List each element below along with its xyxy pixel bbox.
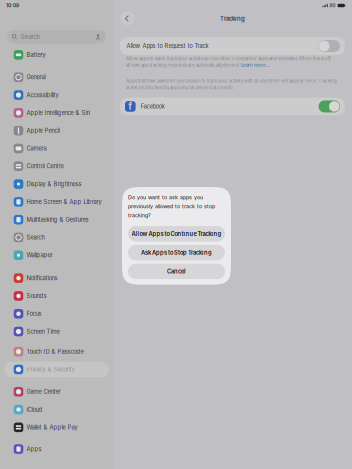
staticText: Wallpaper bbox=[26, 252, 52, 259]
button[interactable]: Allow Apps to Request to Track bbox=[120, 37, 345, 55]
staticText: f bbox=[128, 100, 132, 112]
button[interactable]: Multitasking & Gestures bbox=[4, 212, 109, 227]
button[interactable]: Control Centre bbox=[4, 158, 109, 174]
staticText: activity is blocked by apps you've denie… bbox=[126, 85, 234, 90]
staticText: Notifications bbox=[26, 275, 57, 282]
staticText: all new app tracking requests are automa… bbox=[126, 62, 241, 68]
staticText: Learn more... bbox=[241, 62, 269, 68]
staticText: Facebook bbox=[141, 103, 165, 110]
button[interactable]: Learn more... bbox=[241, 62, 269, 68]
button[interactable]: Search bbox=[7, 30, 106, 44]
button[interactable]: Accessibility bbox=[4, 87, 109, 103]
button[interactable]: Game Center bbox=[4, 384, 109, 399]
button[interactable]: Apps bbox=[4, 441, 109, 457]
button[interactable]: iCloud bbox=[4, 402, 109, 417]
staticText: Do you want to ask apps you bbox=[128, 194, 203, 200]
staticText: Accessibility bbox=[26, 91, 58, 98]
staticText: Allow apps to ask to track your activity… bbox=[126, 56, 331, 61]
button[interactable]: Apple Pencil bbox=[4, 123, 109, 138]
button[interactable]: Focus bbox=[4, 306, 109, 321]
staticText: Apps that have asked for permission to t… bbox=[126, 78, 337, 84]
button[interactable]: Privacy & Security bbox=[4, 362, 109, 377]
staticText: Focus bbox=[26, 310, 41, 317]
staticText: previously allowed to track to stop bbox=[128, 203, 215, 210]
staticText: Camera bbox=[26, 145, 46, 152]
button[interactable]: Display & Brightness bbox=[4, 176, 109, 192]
button[interactable]: Wallet & Apple Pay bbox=[4, 420, 109, 435]
staticText: Control Centre bbox=[26, 163, 63, 170]
button[interactable]: Sounds bbox=[4, 288, 109, 304]
staticText: Search bbox=[26, 234, 44, 241]
button[interactable]: General bbox=[4, 69, 109, 85]
staticText: Cancel bbox=[167, 268, 186, 275]
button[interactable]: Apple Intelligence & Siri bbox=[4, 105, 109, 121]
staticText: Apple Intelligence & Siri bbox=[26, 109, 89, 116]
staticText: Game Center bbox=[26, 388, 60, 395]
button[interactable]: Allow Apps to Continue Tracking bbox=[128, 226, 225, 242]
staticText: Allow Apps to Request to Track bbox=[126, 43, 208, 49]
staticText: Ask Apps to Stop Tracking bbox=[141, 249, 212, 256]
button[interactable]: Ask Apps to Stop Tracking bbox=[128, 245, 225, 260]
staticText: 90 bbox=[330, 3, 336, 8]
button[interactable]: Search bbox=[4, 230, 109, 245]
staticText: tracking? bbox=[128, 212, 151, 219]
button[interactable]: Home Screen & App Library bbox=[4, 194, 109, 210]
button[interactable]: Back bbox=[119, 10, 136, 27]
staticText: Privacy & Security bbox=[26, 366, 74, 373]
staticText: Allow Apps to Continue Tracking bbox=[131, 230, 221, 237]
staticText: Multitasking & Gestures bbox=[26, 216, 88, 223]
staticText: Apps bbox=[26, 445, 41, 452]
button[interactable]: Wallpaper bbox=[4, 247, 109, 263]
button[interactable]: Camera bbox=[4, 141, 109, 156]
button[interactable]: Notifications bbox=[4, 270, 109, 286]
button[interactable]: Screen Time bbox=[4, 324, 109, 339]
staticText: Home Screen & App Library bbox=[26, 198, 101, 205]
staticText: Screen Time bbox=[26, 328, 59, 335]
staticText: iCloud bbox=[26, 406, 42, 413]
staticText: Apple Pencil bbox=[26, 127, 59, 134]
button[interactable]: Battery bbox=[4, 47, 109, 63]
staticText: Touch ID & Passcode bbox=[26, 348, 83, 355]
staticText: Battery bbox=[26, 51, 45, 58]
button[interactable]: Cancel bbox=[128, 264, 225, 279]
staticText: Search bbox=[20, 33, 40, 40]
staticText: General bbox=[26, 74, 45, 81]
staticText: 10:09 bbox=[6, 3, 19, 8]
staticText: Tracking bbox=[220, 15, 245, 22]
staticText: Wallet & Apple Pay bbox=[26, 424, 77, 431]
button[interactable]: Touch ID & Passcode bbox=[4, 344, 109, 359]
staticText: Sounds bbox=[26, 292, 46, 299]
staticText: Display & Brightness bbox=[26, 180, 81, 187]
button[interactable]: f bbox=[120, 98, 345, 115]
